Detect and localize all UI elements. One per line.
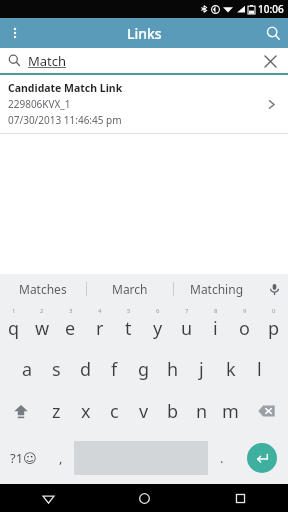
- staticText: 07/30/2013 11:46:45 pm: [8, 113, 122, 127]
- staticText: z: [52, 399, 61, 424]
- button[interactable]: 1: [0, 304, 28, 348]
- staticText: q: [8, 316, 20, 341]
- staticText: 229806KVX_1: [8, 97, 71, 111]
- button[interactable]: 5: [114, 304, 143, 348]
- button[interactable]: Shift: [0, 390, 42, 432]
- button[interactable]: 0: [259, 304, 288, 348]
- staticText: l: [257, 357, 262, 382]
- staticText: 10:06: [258, 2, 284, 16]
- staticText: Links: [127, 24, 162, 43]
- staticText: 7: [185, 307, 189, 315]
- staticText: Candidate Match Link: [8, 81, 123, 95]
- button[interactable]: Recents: [192, 484, 288, 512]
- staticText: n: [196, 399, 208, 424]
- staticText: .: [220, 449, 224, 467]
- staticText: e: [65, 316, 76, 341]
- staticText: 4: [98, 307, 102, 315]
- staticText: y: [153, 316, 163, 341]
- button[interactable]: ,: [47, 432, 74, 484]
- staticText: 2: [40, 307, 44, 315]
- staticText: h: [167, 357, 179, 382]
- button[interactable]: d: [71, 348, 100, 390]
- staticText: u: [181, 316, 193, 341]
- button[interactable]: x: [71, 390, 100, 432]
- staticText: p: [268, 316, 280, 341]
- button[interactable]: 9: [230, 304, 259, 348]
- staticText: t: [125, 316, 132, 341]
- button[interactable]: 7: [172, 304, 201, 348]
- button[interactable]: March: [87, 274, 173, 304]
- button[interactable]: Candidate Match Link: [0, 75, 288, 133]
- staticText: b: [167, 399, 179, 424]
- staticText: 8: [214, 307, 218, 315]
- staticText: 9: [243, 307, 247, 315]
- button[interactable]: v: [129, 390, 158, 432]
- staticText: Match: [28, 52, 260, 70]
- staticText: 6: [156, 307, 160, 315]
- staticText: 3: [69, 307, 73, 315]
- staticText: k: [226, 357, 236, 382]
- staticText: c: [110, 399, 119, 424]
- staticText: f: [111, 357, 118, 382]
- button[interactable]: Enter: [247, 443, 277, 473]
- button[interactable]: Voice input: [260, 274, 288, 304]
- button[interactable]: Clear: [260, 51, 280, 71]
- staticText: Matches: [19, 281, 67, 297]
- staticText: 1: [12, 307, 16, 315]
- staticText: r: [96, 316, 104, 341]
- staticText: ?1☺: [10, 449, 37, 467]
- button[interactable]: 2: [28, 304, 56, 348]
- staticText: March: [112, 281, 148, 297]
- button[interactable]: 6: [143, 304, 172, 348]
- button[interactable]: 4: [85, 304, 114, 348]
- button[interactable]: 3: [56, 304, 85, 348]
- button[interactable]: .: [208, 432, 235, 484]
- button[interactable]: Search: [258, 18, 288, 48]
- button[interactable]: h: [158, 348, 187, 390]
- staticText: 0: [272, 307, 276, 315]
- button[interactable]: Matches: [0, 274, 86, 304]
- staticText: ,: [59, 449, 63, 467]
- staticText: o: [239, 316, 250, 341]
- staticText: a: [22, 357, 33, 382]
- button[interactable]: Backspace: [245, 390, 288, 432]
- button[interactable]: l: [245, 348, 274, 390]
- button[interactable]: g: [129, 348, 158, 390]
- button[interactable]: Back: [0, 484, 96, 512]
- button[interactable]: More options: [0, 18, 30, 48]
- staticText: Matching: [190, 281, 244, 297]
- button[interactable]: Home: [96, 484, 192, 512]
- button[interactable]: z: [42, 390, 71, 432]
- button[interactable]: n: [187, 390, 216, 432]
- staticText: w: [35, 316, 50, 341]
- staticText: v: [139, 399, 149, 424]
- staticText: g: [138, 357, 150, 382]
- staticText: m: [222, 399, 239, 424]
- staticText: x: [81, 399, 91, 424]
- staticText: s: [52, 357, 61, 382]
- staticText: j: [199, 357, 204, 382]
- staticText: d: [80, 357, 92, 382]
- button[interactable]: Matching: [174, 274, 260, 304]
- button[interactable]: k: [216, 348, 245, 390]
- staticText: i: [213, 316, 218, 341]
- button[interactable]: c: [100, 390, 129, 432]
- button[interactable]: a: [13, 348, 42, 390]
- button[interactable]: 8: [201, 304, 230, 348]
- button[interactable]: m: [216, 390, 245, 432]
- button[interactable]: f: [100, 348, 129, 390]
- button[interactable]: s: [42, 348, 71, 390]
- button[interactable]: ?1☺: [0, 432, 47, 484]
- button[interactable]: j: [187, 348, 216, 390]
- staticText: 5: [127, 307, 131, 315]
- button[interactable]: b: [158, 390, 187, 432]
